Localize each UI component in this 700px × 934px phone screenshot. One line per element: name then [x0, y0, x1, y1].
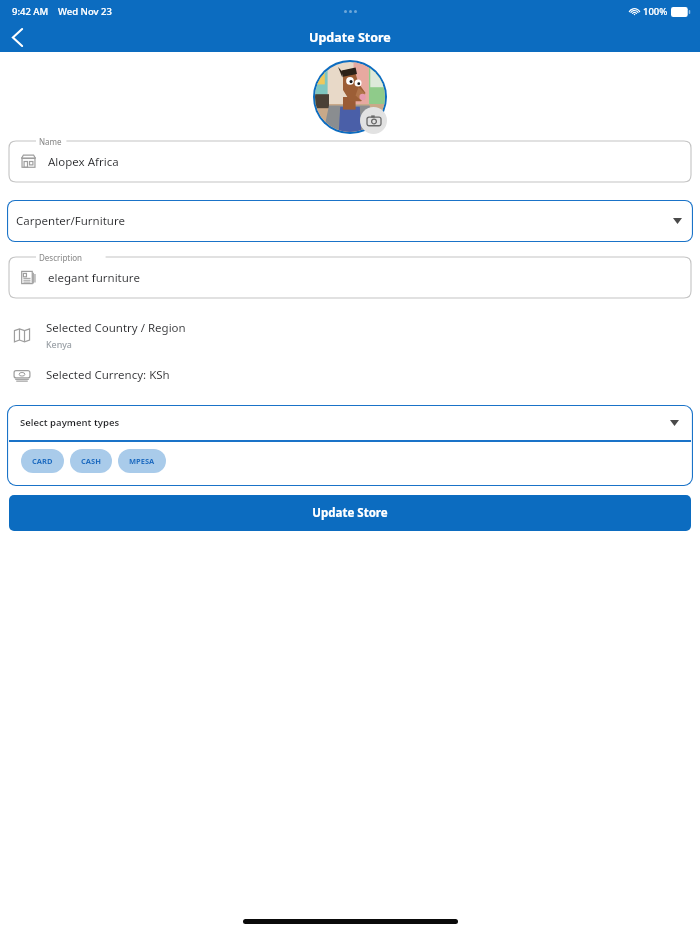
staticText: Selected Country / Region [46, 320, 186, 336]
button[interactable]: Update Store [9, 495, 691, 531]
staticText: Carpenter/Furniture [16, 213, 125, 229]
staticText: elegant furniture [48, 270, 140, 286]
staticText: Selected Currency: KSh [46, 367, 170, 383]
other: Open payment types [670, 420, 679, 426]
staticText: CASH [81, 456, 101, 466]
other: Open category list [673, 218, 682, 224]
staticText: Update Store [309, 29, 391, 46]
staticText: Update Store [312, 505, 388, 521]
staticText: MPESA [129, 456, 155, 466]
staticText: Select payment types [20, 416, 120, 429]
button[interactable]: MPESA [118, 449, 166, 473]
button[interactable]: Change photo [360, 107, 387, 134]
staticText: Description [39, 252, 83, 263]
button[interactable]: Selected Country / Region [13, 320, 700, 350]
button[interactable]: Store photo [315, 62, 385, 132]
button[interactable]: Selected Currency: KSh [13, 366, 700, 384]
staticText: CARD [32, 456, 53, 466]
staticText: Kenya [46, 338, 72, 350]
button[interactable]: Description [9, 257, 691, 298]
staticText: Alopex Africa [48, 154, 119, 170]
staticText: 9:42 AM [12, 5, 49, 18]
staticText: Name [39, 136, 62, 147]
button[interactable]: Select payment types [7, 405, 693, 440]
button[interactable]: CARD [21, 449, 64, 473]
button[interactable]: Back [0, 22, 34, 52]
staticText: Wed Nov 23 [58, 5, 112, 18]
button[interactable]: Name [9, 141, 691, 182]
staticText: 100% [643, 5, 668, 18]
button[interactable]: Carpenter/Furniture [7, 200, 693, 242]
button[interactable]: CASH [70, 449, 112, 473]
